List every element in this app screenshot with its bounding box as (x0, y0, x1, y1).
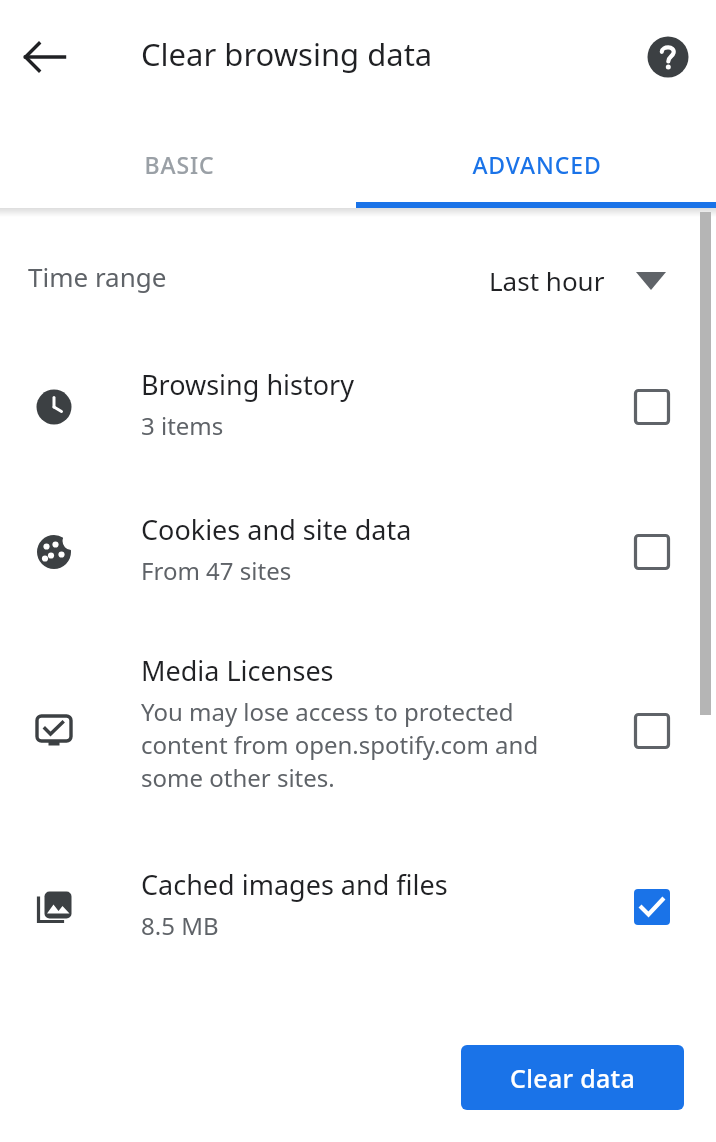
staticText: Media Licenses (141, 652, 334, 689)
staticText: 8.5 MB (141, 909, 219, 942)
staticText: Browsing history (141, 366, 354, 403)
staticText: You may lose access to protected content… (141, 695, 591, 794)
staticText: ADVANCED (472, 149, 602, 180)
button[interactable]: Unchecked (630, 709, 674, 753)
button[interactable]: Media Licenses (0, 638, 716, 823)
staticText: Clear data (510, 1061, 636, 1095)
button[interactable]: Checked (630, 885, 674, 929)
button[interactable]: Unchecked (630, 530, 674, 574)
staticText: BASIC (144, 149, 215, 180)
button[interactable]: Clear data (461, 1045, 684, 1110)
staticText: Cookies and site data (141, 511, 412, 548)
button[interactable]: Time range (0, 234, 716, 326)
button[interactable]: Browsing history (0, 352, 716, 462)
staticText: 3 items (141, 409, 224, 442)
button[interactable]: BASIC (0, 120, 358, 208)
button[interactable]: Unchecked (630, 385, 674, 429)
button[interactable]: Help (641, 30, 695, 84)
staticText: Last hour (489, 263, 605, 298)
button[interactable]: Back (18, 30, 72, 84)
button[interactable]: ADVANCED (358, 120, 716, 208)
staticText: From 47 sites (141, 554, 292, 587)
staticText: Time range (28, 259, 167, 294)
staticText: Clear browsing data (141, 33, 433, 75)
button[interactable]: Cached images and files (0, 852, 716, 962)
button[interactable]: Cookies and site data (0, 497, 716, 607)
staticText: Cached images and files (141, 866, 448, 903)
